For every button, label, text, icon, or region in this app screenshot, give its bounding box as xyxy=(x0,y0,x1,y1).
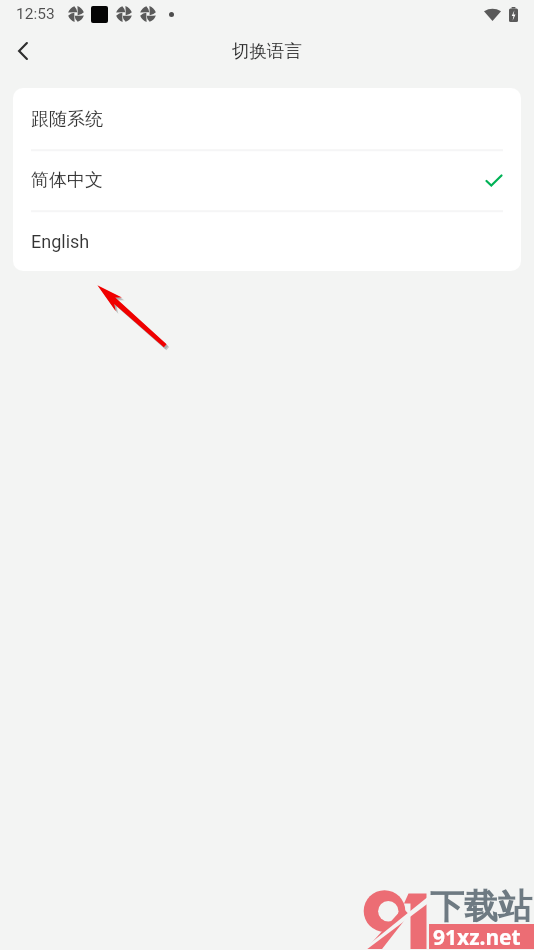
staticText: 跟随系统 xyxy=(31,108,103,131)
staticText: English xyxy=(31,231,90,252)
staticText: 下载站 xyxy=(430,885,532,928)
button[interactable]: Back xyxy=(0,28,48,74)
button[interactable]: 跟随系统 xyxy=(13,88,521,149)
button[interactable]: English xyxy=(13,210,521,271)
button[interactable]: 简体中文 xyxy=(13,149,521,210)
staticText: 91xz.net xyxy=(433,923,521,948)
staticText: 12:53 xyxy=(16,5,55,23)
staticText: 简体中文 xyxy=(31,169,103,192)
staticText: 切换语言 xyxy=(232,40,302,62)
